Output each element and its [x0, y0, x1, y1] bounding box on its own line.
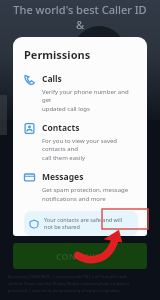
other: Contacts: [24, 123, 35, 134]
other: Calls: [24, 74, 35, 85]
staticText: The world's best Caller ID &: [10, 2, 150, 32]
other: Messages: [24, 172, 35, 183]
staticText: Contacts: [42, 122, 80, 134]
button[interactable]: CONTINUE: [13, 243, 147, 269]
staticText: call them easily: [42, 154, 86, 162]
staticText: Scam Blocking app: [31, 35, 130, 50]
staticText: processed. I consent to the processing o…: [8, 288, 120, 293]
button[interactable]: Messages: [24, 171, 138, 203]
staticText: confirm I have read the Privacy Notice e…: [8, 281, 130, 286]
staticText: By clicking 'CONTINUE', I consent to the…: [8, 274, 127, 279]
staticText: Permissions: [24, 47, 91, 62]
staticText: Get spam protection, message: [42, 186, 129, 194]
staticText: CONTINUE: [56, 250, 104, 262]
button[interactable]: Contacts: [24, 122, 138, 162]
button[interactable]: Calls: [24, 73, 138, 113]
staticText: For you to view your saved contacts and: [42, 137, 138, 153]
staticText: Messages: [42, 171, 84, 183]
staticText: notifications and more: [42, 195, 106, 203]
staticText: Calls: [42, 73, 62, 85]
staticText: Your contacts are safe and will not be s…: [44, 216, 132, 230]
staticText: Verify your phone number and get: [42, 88, 138, 104]
staticText: updated call logs: [42, 105, 90, 113]
